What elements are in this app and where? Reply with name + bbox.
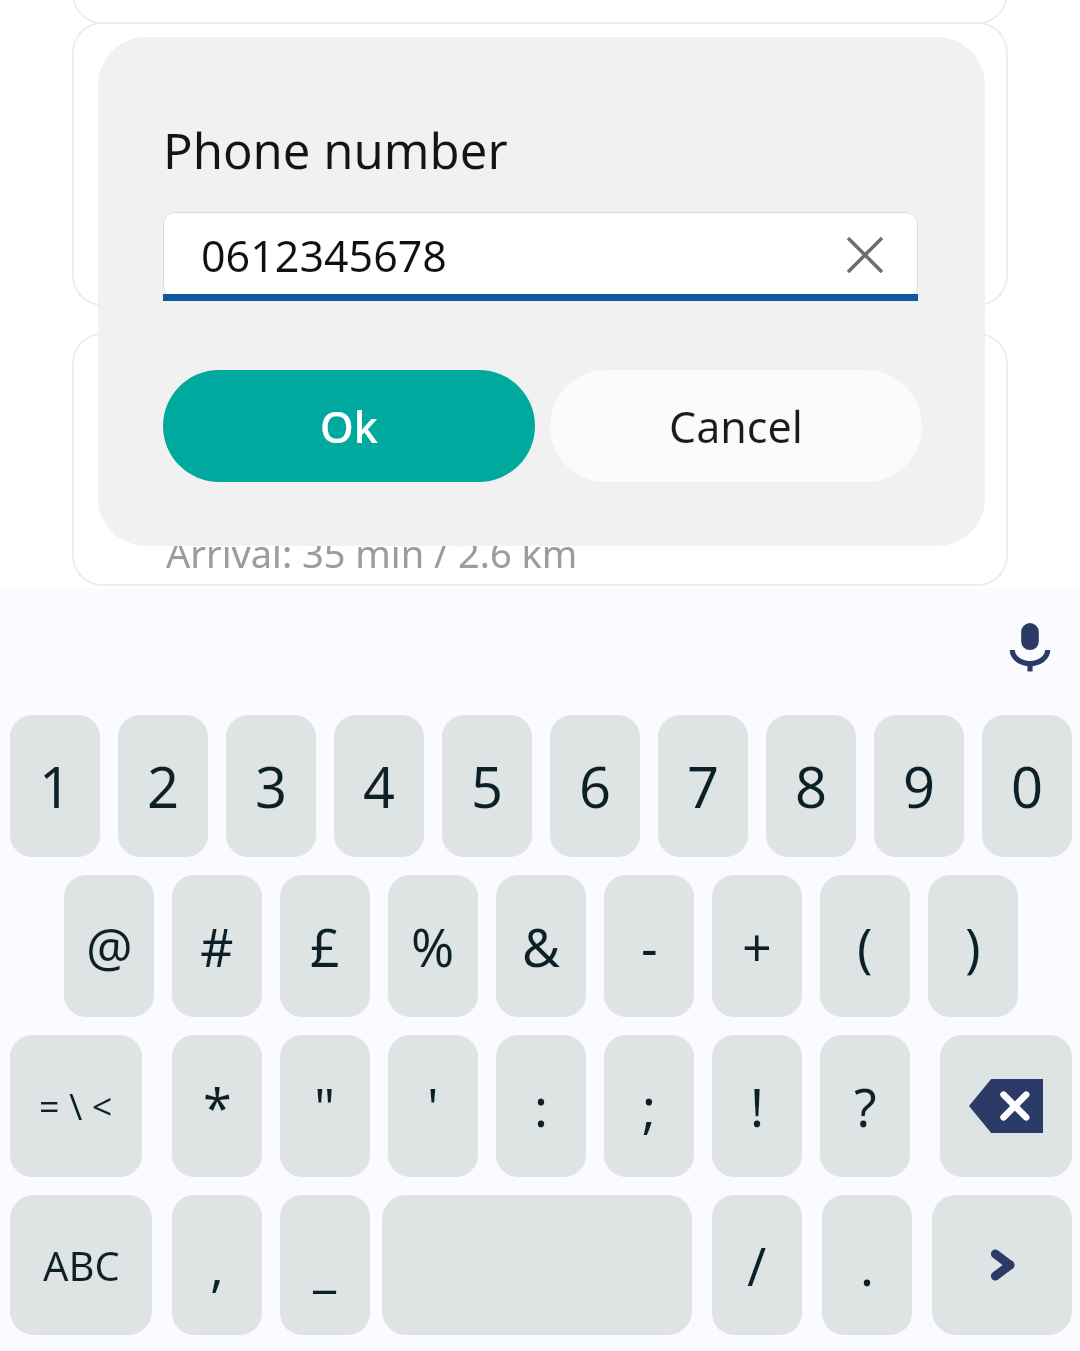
staticText: = \ < [39,1082,113,1131]
staticText: ? [854,1071,877,1142]
button[interactable]: @ [64,875,154,1017]
staticText: " [314,1071,336,1142]
button[interactable]: 7 [658,715,748,857]
staticText: _ [313,1230,337,1301]
staticText: 6 [579,748,612,824]
button[interactable]: . [822,1195,912,1335]
button[interactable]: 3 [226,715,316,857]
staticText: Ok [320,397,378,456]
button[interactable]: ! [712,1035,802,1177]
button[interactable]: Voice input [990,607,1070,687]
button[interactable] [72,22,1008,306]
button[interactable]: ) [928,875,1018,1017]
button[interactable]: * [172,1035,262,1177]
button[interactable]: 5 [442,715,532,857]
button[interactable]: 0612345678 [163,212,918,298]
staticText: ) [965,911,981,982]
button[interactable]: 2 [118,715,208,857]
staticText: . [860,1230,874,1301]
staticText: 9 [903,748,936,824]
staticText: Arrival: 35 min / 2.6 km [166,527,578,579]
button[interactable]: % [388,875,478,1017]
staticText: # [200,911,234,982]
staticText: , [210,1230,224,1301]
staticText: ( [857,911,873,982]
button[interactable]: Clear text [836,226,894,284]
button[interactable]: _ [280,1195,370,1335]
staticText: + [742,911,772,982]
button[interactable]: 6 [550,715,640,857]
staticText: Cancel [669,397,803,456]
staticText: @ [86,911,133,982]
button[interactable]: = \ < [10,1035,142,1177]
button[interactable]: 9 [874,715,964,857]
button[interactable]: ( [820,875,910,1017]
staticText: 3 [255,748,288,824]
button[interactable]: Cancel [550,370,922,482]
button[interactable]: ABC [10,1195,152,1335]
button[interactable]: , [172,1195,262,1335]
button[interactable]: " [280,1035,370,1177]
staticText: £ [310,911,340,982]
staticText: / [747,1230,767,1301]
button[interactable]: + [712,875,802,1017]
button[interactable]: : [496,1035,586,1177]
staticText: 8 [795,748,828,824]
button[interactable]: # [172,875,262,1017]
staticText: 1 [39,748,72,824]
staticText: 0612345678 [201,226,447,285]
button[interactable]: Backspace [940,1035,1072,1177]
button[interactable]: - [604,875,694,1017]
button[interactable]: 0 [982,715,1072,857]
button[interactable]: ' [388,1035,478,1177]
staticText: 4 [363,748,396,824]
button[interactable]: £ [280,875,370,1017]
button[interactable]: ; [604,1035,694,1177]
staticText: ! [750,1071,764,1142]
button[interactable]: 8 [766,715,856,857]
button[interactable]: / [712,1195,802,1335]
staticText: 5 [471,748,504,824]
staticText: : [534,1071,548,1142]
staticText: ; [642,1071,656,1142]
staticText: 7 [687,748,720,824]
staticText: 2 [147,748,180,824]
button[interactable]: Ok [163,370,535,482]
staticText: ' [427,1071,439,1142]
staticText: Phone number [163,117,508,184]
staticText: * [203,1071,232,1142]
staticText: & [522,911,561,982]
button[interactable]: 4 [334,715,424,857]
staticText: % [411,911,455,982]
staticText: 0 [1011,748,1044,824]
button[interactable]: & [496,875,586,1017]
button[interactable]: ? [820,1035,910,1177]
button[interactable]: 1 [10,715,100,857]
button[interactable]: Next [932,1195,1072,1335]
button[interactable]: Space [382,1195,692,1335]
staticText: - [641,911,658,982]
button[interactable]: Arrival: 35 min / 2.6 km [72,333,1008,586]
staticText: ABC [43,1238,120,1292]
